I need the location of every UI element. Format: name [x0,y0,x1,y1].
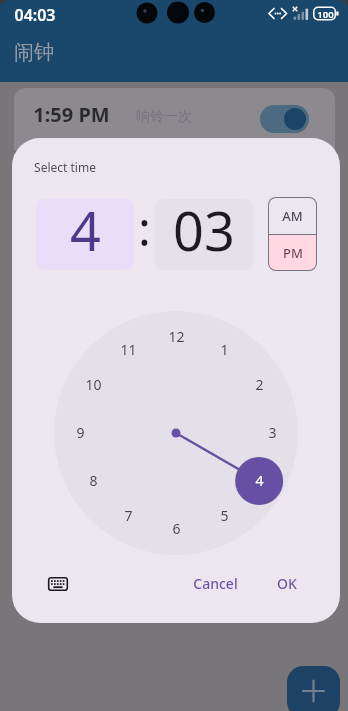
staticText: 3 [268,423,277,442]
staticText: 10 [85,375,102,394]
button[interactable] [36,566,80,602]
staticText: 9 [76,423,85,442]
button[interactable] [260,105,309,133]
staticText: PM [283,244,303,262]
button[interactable]: 1:59 PM [14,88,335,150]
button[interactable] [287,666,340,711]
staticText: 5 [220,506,229,525]
staticText: 12 [168,327,185,346]
button[interactable]: OK [267,570,307,596]
staticText: 04:03 [14,4,56,26]
staticText: 6 [172,519,181,538]
staticText: Cancel [193,574,238,593]
staticText: 闹钟 [14,40,54,65]
staticText: 4 [70,199,101,264]
staticText: 响铃一次 [136,108,192,126]
staticText: 1 [220,340,229,359]
staticText: Select time [34,159,96,175]
staticText: AM [282,207,303,225]
button[interactable]: 03 [155,199,253,270]
button[interactable]: PM [269,235,316,270]
staticText: 8 [89,471,98,490]
button[interactable]: 4 [36,199,134,270]
staticText: 11 [120,340,137,359]
staticText: 4 [255,471,264,490]
staticText: 1:59 PM [33,101,110,128]
button[interactable]: AM [269,198,316,234]
staticText: 100 [317,8,334,21]
staticText: 2 [255,375,264,394]
button[interactable]: Cancel [183,570,247,596]
staticText: 7 [124,506,133,525]
staticText: : [138,195,151,260]
staticText: OK [277,574,297,593]
staticText: 03 [173,199,235,264]
